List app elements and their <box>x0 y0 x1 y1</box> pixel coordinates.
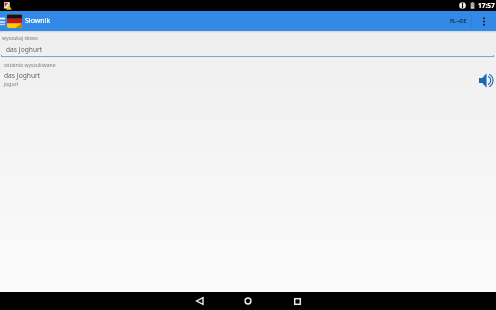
button[interactable]: Open navigation drawer <box>0 11 5 31</box>
staticText: wyszukaj słowo <box>2 35 38 42</box>
button[interactable]: Recent apps <box>284 292 310 310</box>
button[interactable]: Play pronunciation <box>478 72 495 88</box>
staticText: PL→DE <box>450 18 467 25</box>
staticText: ostatnio wyszukiwane <box>4 62 56 69</box>
button[interactable]: Back <box>186 292 212 310</box>
staticText: Słownik <box>25 16 51 26</box>
button[interactable]: Home <box>235 292 261 310</box>
staticText: das Joghurt <box>4 71 41 80</box>
staticText: das Joghurt <box>6 45 43 54</box>
staticText: 17:57 <box>478 1 495 10</box>
staticText: jogurt <box>4 81 19 88</box>
button[interactable]: More options <box>472 11 496 31</box>
button[interactable]: PL→DE <box>448 11 468 31</box>
button[interactable]: das Joghurt <box>0 71 496 88</box>
